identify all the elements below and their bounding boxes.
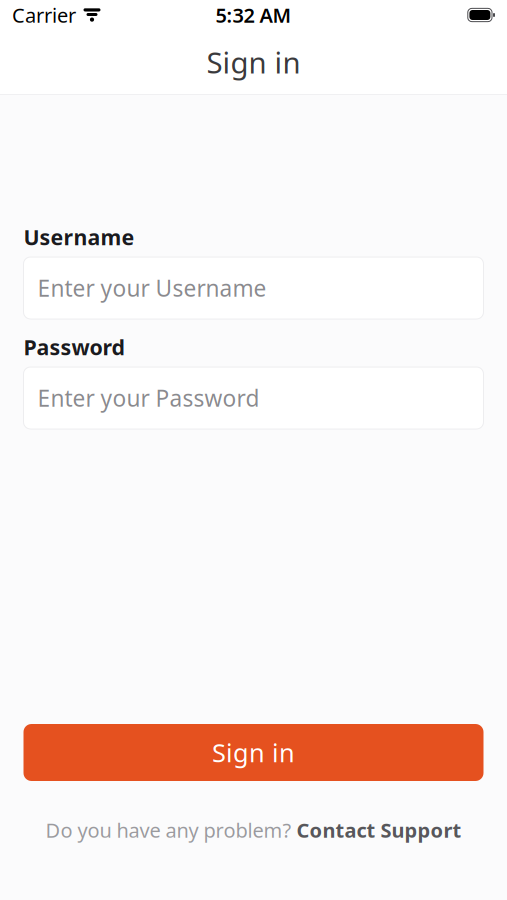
staticText: Do you have any problem? — [45, 817, 291, 843]
staticText: Username — [23, 223, 134, 251]
staticText: Sign in — [206, 42, 300, 81]
button[interactable]: Do you have any problem? — [23, 817, 483, 843]
staticText: Enter your Password — [37, 383, 259, 413]
staticText: Sign in — [212, 736, 295, 769]
button[interactable]: Sign in — [23, 724, 483, 781]
staticText: Carrier — [12, 2, 76, 28]
staticText: Enter your Username — [37, 273, 266, 303]
staticText: Password — [23, 333, 124, 361]
button[interactable]: Enter your Password — [23, 367, 483, 429]
staticText: 5:32 AM — [215, 2, 291, 28]
button[interactable]: Enter your Username — [23, 257, 483, 319]
staticText: Contact Support — [296, 817, 461, 843]
